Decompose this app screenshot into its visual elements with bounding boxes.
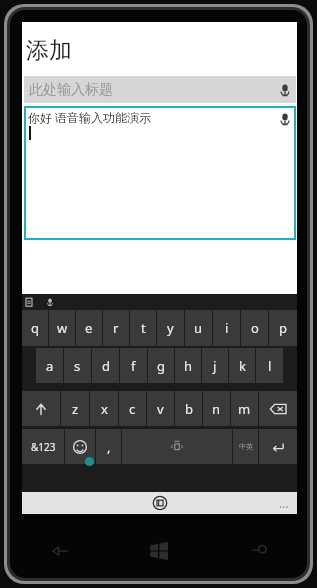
staticText: w: [57, 319, 68, 337]
staticText: t: [141, 319, 146, 337]
button[interactable]: r: [103, 310, 129, 346]
button[interactable]: n: [203, 391, 230, 426]
button[interactable]: h: [175, 348, 201, 383]
button[interactable]: 你好 语音输入功能演示: [24, 106, 296, 240]
button[interactable]: l: [256, 348, 283, 383]
staticText: e: [85, 319, 93, 337]
staticText: z: [72, 400, 79, 418]
staticText: l: [268, 357, 272, 375]
staticText: o: [251, 319, 259, 337]
button[interactable]: Back: [10, 524, 109, 578]
staticText: d: [102, 357, 110, 375]
staticText: h: [184, 357, 193, 375]
button[interactable]: o: [241, 310, 268, 346]
button[interactable]: Emoji: [65, 429, 95, 464]
button[interactable]: j: [202, 348, 228, 383]
button[interactable]: b: [175, 391, 202, 426]
button[interactable]: Language: [233, 429, 258, 464]
button[interactable]: s: [64, 348, 91, 383]
button[interactable]: p: [269, 310, 297, 346]
button[interactable]: i: [213, 310, 240, 346]
button[interactable]: f: [120, 348, 147, 383]
button[interactable]: Backspace: [259, 391, 297, 426]
staticText: p: [279, 319, 287, 337]
staticText: a: [46, 357, 54, 375]
button[interactable]: v: [147, 391, 174, 426]
button[interactable]: Clipboard: [22, 295, 36, 309]
button[interactable]: Start: [109, 524, 208, 578]
button[interactable]: u: [185, 310, 212, 346]
staticText: u: [194, 319, 203, 337]
button[interactable]: Space: [122, 429, 232, 464]
button[interactable]: k: [229, 348, 255, 383]
button[interactable]: z: [61, 391, 89, 426]
staticText: b: [185, 400, 193, 418]
button[interactable]: a: [36, 348, 63, 383]
button[interactable]: y: [157, 310, 184, 346]
button[interactable]: Keyboard options: [151, 494, 169, 512]
staticText: i: [225, 319, 229, 337]
staticText: c: [129, 400, 136, 418]
button[interactable]: t: [130, 310, 156, 346]
staticText: q: [31, 319, 39, 337]
button[interactable]: …: [279, 495, 289, 511]
button[interactable]: ,: [96, 429, 121, 464]
staticText: ,: [107, 438, 111, 456]
staticText: 此处输入标题: [29, 81, 274, 99]
staticText: f: [131, 357, 136, 375]
staticText: k: [239, 357, 246, 375]
button[interactable]: m: [231, 391, 258, 426]
staticText: j: [213, 357, 217, 375]
button[interactable]: 此处输入标题: [24, 76, 296, 103]
button[interactable]: Voice typing: [43, 295, 57, 309]
button[interactable]: x: [90, 391, 118, 426]
button[interactable]: Enter: [259, 429, 297, 464]
staticText: m: [238, 400, 251, 418]
button[interactable]: g: [148, 348, 174, 383]
staticText: s: [74, 357, 81, 375]
staticText: n: [212, 400, 221, 418]
button[interactable]: c: [119, 391, 146, 426]
staticText: v: [157, 400, 164, 418]
button[interactable]: Voice input for body: [274, 108, 296, 130]
button[interactable]: e: [76, 310, 102, 346]
button[interactable]: d: [92, 348, 119, 383]
button[interactable]: &123: [22, 429, 64, 464]
staticText: x: [101, 400, 108, 418]
staticText: 添加: [26, 36, 72, 65]
staticText: &123: [31, 440, 56, 454]
staticText: 中英: [239, 442, 253, 451]
staticText: r: [113, 319, 119, 337]
button[interactable]: Shift: [22, 391, 60, 426]
button[interactable]: Search: [208, 524, 307, 578]
staticText: 你好 语音输入功能演示: [28, 109, 152, 125]
staticText: y: [167, 319, 174, 337]
button[interactable]: w: [49, 310, 75, 346]
button[interactable]: Voice input for title: [274, 79, 296, 101]
button[interactable]: q: [22, 310, 48, 346]
staticText: g: [157, 357, 165, 375]
